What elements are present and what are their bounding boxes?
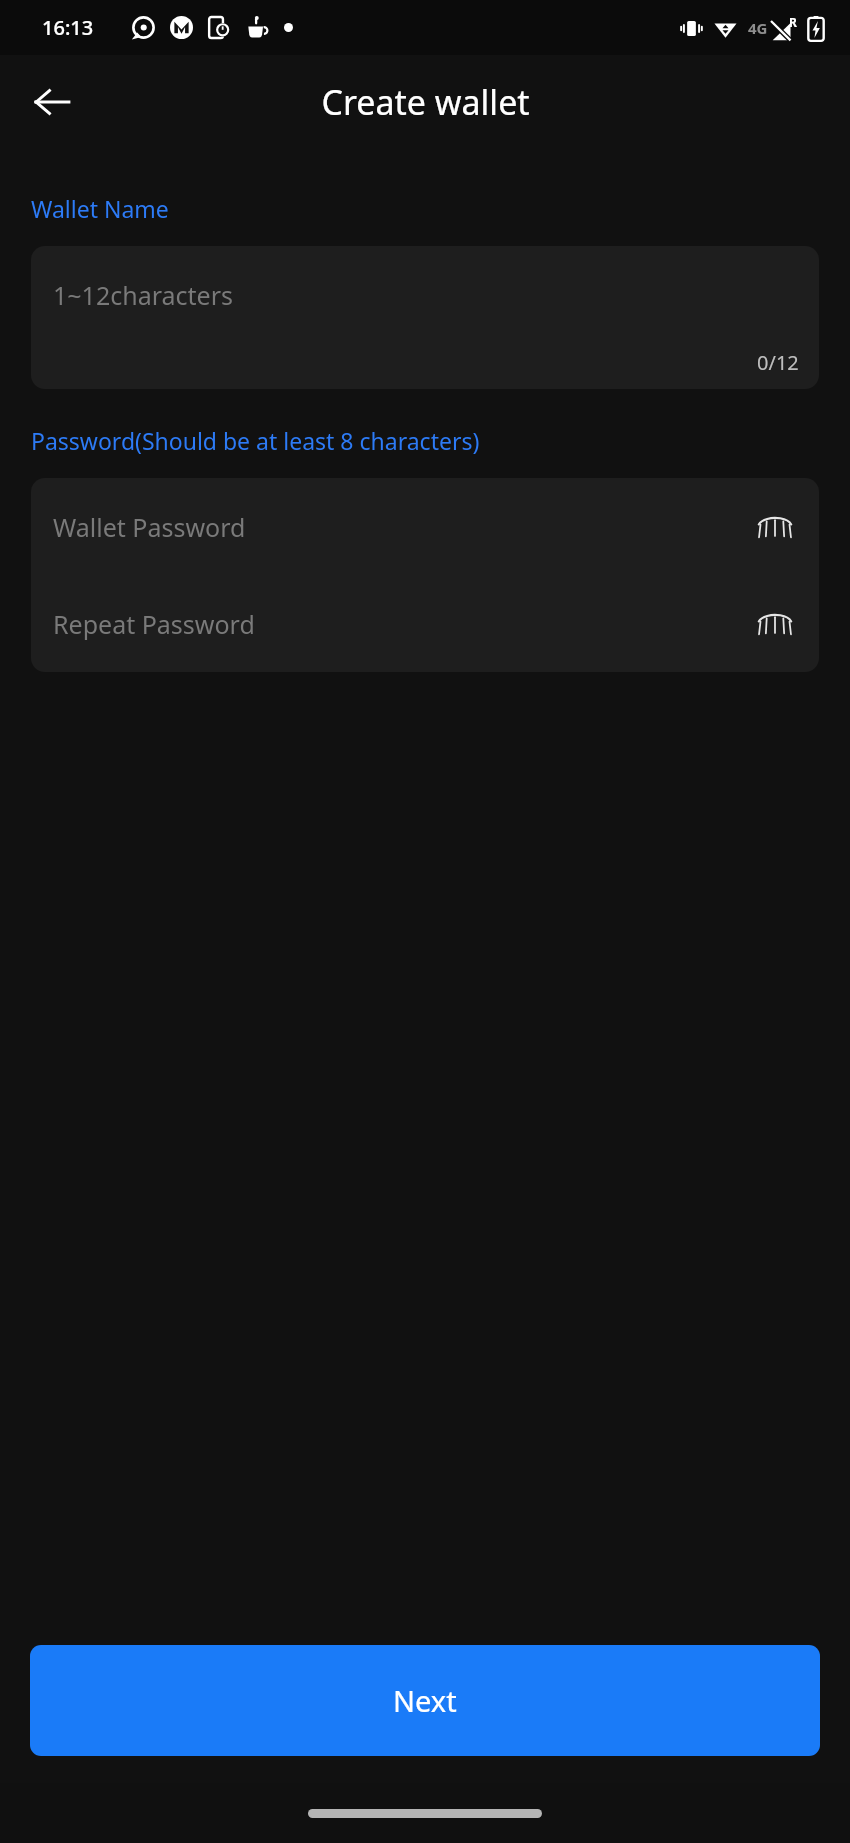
staticText: 16:13 — [42, 14, 94, 41]
staticText: 1~12characters — [53, 278, 233, 312]
staticText: R — [789, 14, 797, 30]
button[interactable]: 1~12characters — [31, 246, 819, 389]
staticText: 4G — [748, 18, 768, 38]
button[interactable]: Show password — [747, 499, 803, 555]
staticText: Wallet Name — [31, 193, 169, 224]
button[interactable]: Next — [30, 1645, 820, 1756]
button[interactable]: Repeat Password — [31, 575, 819, 672]
button[interactable]: Show password — [747, 596, 803, 652]
button[interactable]: Back — [14, 64, 90, 140]
staticText: Next — [393, 1681, 457, 1720]
staticText: Repeat Password — [53, 607, 747, 641]
staticText: 0/12 — [757, 349, 799, 376]
staticText: Password(Should be at least 8 characters… — [31, 425, 480, 456]
staticText: Create wallet — [321, 79, 530, 125]
button[interactable]: Wallet Password — [31, 478, 819, 575]
staticText: Wallet Password — [53, 510, 747, 544]
